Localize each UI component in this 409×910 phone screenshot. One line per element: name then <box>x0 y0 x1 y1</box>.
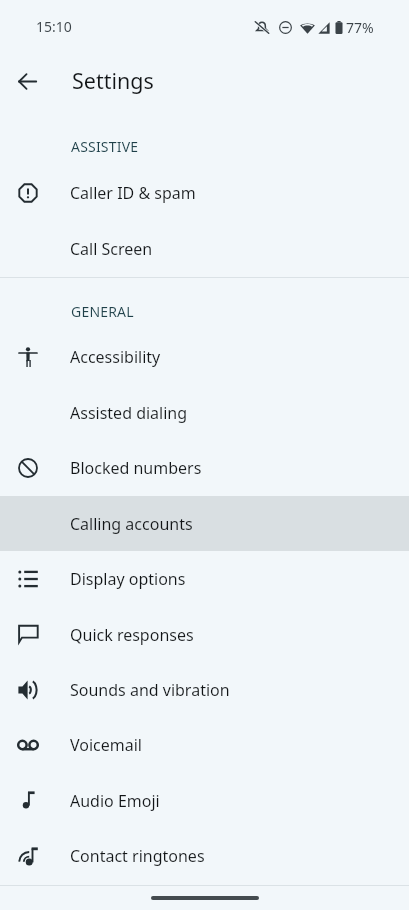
button[interactable]: Blocked numbers <box>0 440 409 496</box>
staticText: Accessibility <box>70 346 161 368</box>
button[interactable]: Call Screen <box>0 221 409 277</box>
staticText: Settings <box>72 66 154 95</box>
button[interactable]: Display options <box>0 551 409 607</box>
staticText: 15:10 <box>36 17 72 36</box>
button[interactable]: Accessibility <box>0 329 409 385</box>
staticText: Sounds and vibration <box>70 679 230 701</box>
staticText: Contact ringtones <box>70 845 205 867</box>
staticText: Display options <box>70 568 186 590</box>
staticText: Assisted dialing <box>70 402 188 424</box>
button[interactable]: Calling accounts <box>0 496 409 551</box>
button[interactable]: Assisted dialing <box>0 385 409 440</box>
staticText: Call Screen <box>70 238 153 260</box>
staticText: Voicemail <box>70 734 142 756</box>
staticText: Calling accounts <box>70 513 193 535</box>
button[interactable]: Contact ringtones <box>0 828 409 883</box>
staticText: Blocked numbers <box>70 457 202 479</box>
staticText: GENERAL <box>71 302 134 321</box>
button[interactable]: Caller ID & spam <box>0 165 409 221</box>
staticText: Audio Emoji <box>70 790 160 812</box>
button[interactable]: Sounds and vibration <box>0 662 409 717</box>
staticText: 77% <box>346 18 374 37</box>
staticText: ASSISTIVE <box>71 137 139 156</box>
button[interactable]: Voicemail <box>0 717 409 773</box>
staticText: Caller ID & spam <box>70 182 196 204</box>
button[interactable]: Quick responses <box>0 607 409 662</box>
button[interactable]: Audio Emoji <box>0 773 409 828</box>
button[interactable]: Back <box>8 62 46 100</box>
staticText: Quick responses <box>70 624 194 646</box>
